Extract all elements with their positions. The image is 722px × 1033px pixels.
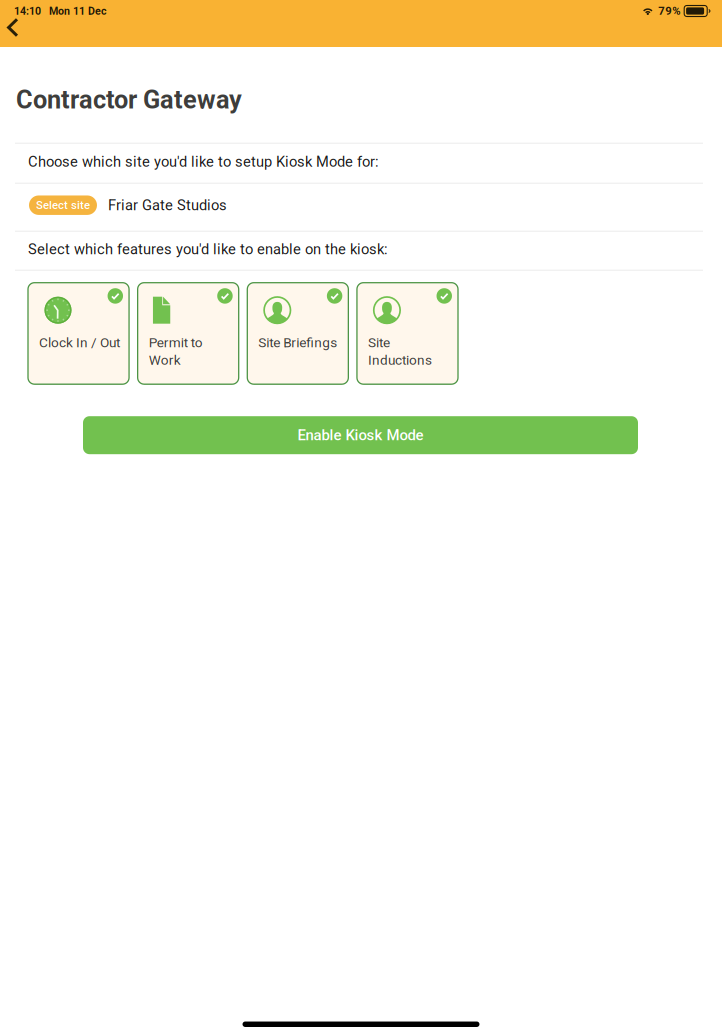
staticText: Permit to bbox=[149, 335, 203, 351]
staticText: Work bbox=[149, 352, 181, 368]
staticText: Clock In / Out bbox=[39, 335, 120, 351]
button[interactable]: Permit to bbox=[138, 283, 239, 384]
staticText: Contractor Gateway bbox=[16, 85, 242, 115]
staticText: Enable Kiosk Mode bbox=[297, 426, 423, 444]
staticText: Site Briefings bbox=[258, 335, 337, 351]
staticText: Select site bbox=[36, 198, 90, 212]
staticText: Select which features you'd like to enab… bbox=[28, 241, 388, 258]
staticText: Site bbox=[368, 335, 390, 351]
button[interactable]: Enable Kiosk Mode bbox=[83, 416, 638, 454]
button[interactable]: Site Briefings bbox=[247, 283, 348, 384]
button[interactable]: Site bbox=[357, 283, 458, 384]
button[interactable]: Back bbox=[0, 20, 41, 46]
button[interactable]: Select site bbox=[29, 195, 97, 215]
staticText: Mon 11 Dec bbox=[49, 5, 107, 17]
button[interactable]: Clock In / Out bbox=[28, 283, 129, 384]
staticText: 14:10 bbox=[14, 5, 41, 17]
staticText: 79% bbox=[658, 4, 680, 18]
staticText: Inductions bbox=[368, 352, 432, 368]
staticText: Choose which site you'd like to setup Ki… bbox=[28, 153, 379, 170]
staticText: Friar Gate Studios bbox=[108, 197, 227, 214]
